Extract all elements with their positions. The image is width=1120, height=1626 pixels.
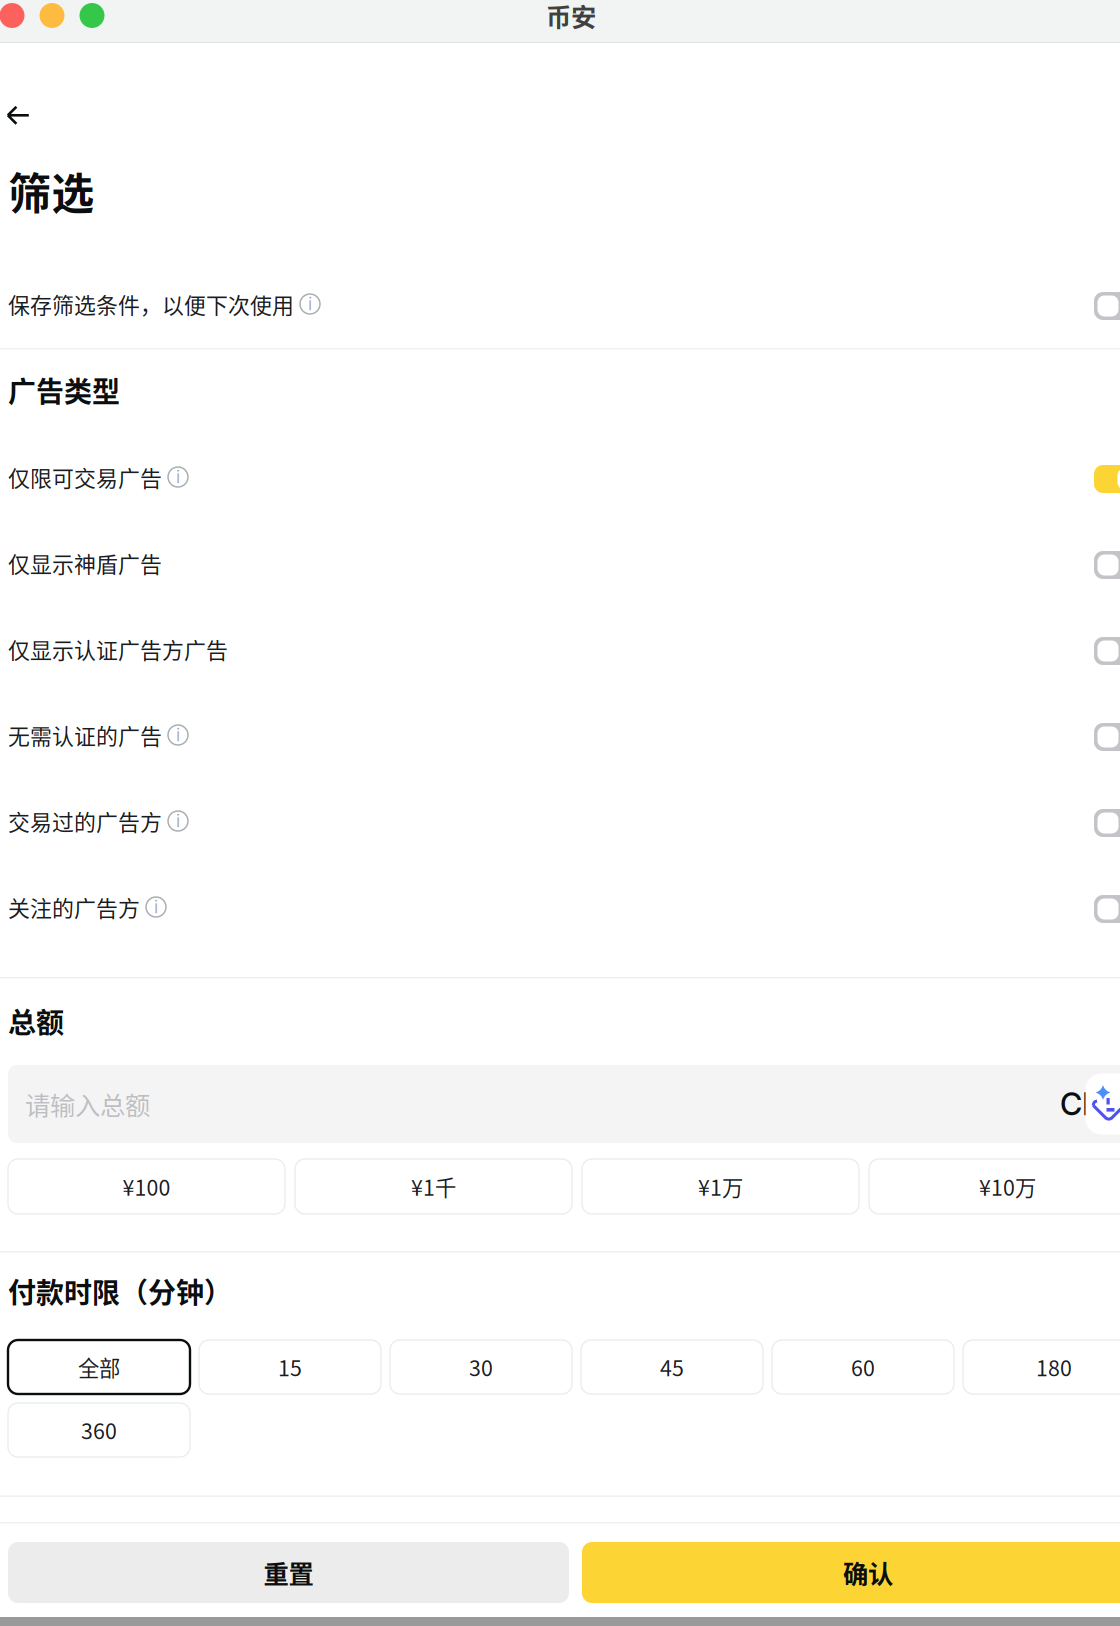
button[interactable]: 仅显示认证广告方广告 (0, 606, 1120, 692)
staticText: 360 (81, 1415, 117, 1445)
button[interactable]: 无需认证的广告 (0, 692, 1120, 778)
button[interactable]: 360 (8, 1403, 190, 1457)
staticText: 付款时限（分钟） (8, 1271, 232, 1311)
staticText: i (176, 724, 180, 745)
staticText: 15 (278, 1352, 302, 1382)
staticText: 请输入总额 (25, 1086, 150, 1122)
staticText: 仅显示神盾广告 (8, 547, 162, 579)
staticText: ¥1万 (698, 1171, 743, 1202)
staticText: 重置 (263, 1554, 313, 1591)
staticText: i (176, 466, 180, 487)
staticText: CNY (1060, 1085, 1120, 1122)
button[interactable]: ¥10万 (869, 1159, 1120, 1214)
staticText: ¥100 (122, 1171, 170, 1202)
button[interactable]: 交易过的广告方 (0, 778, 1120, 864)
staticText: 总额 (8, 1001, 64, 1041)
staticText: i (308, 293, 312, 314)
button[interactable]: 60 (772, 1340, 954, 1394)
staticText: 全部 (78, 1352, 120, 1382)
button[interactable]: 仅显示神盾广告 (0, 520, 1120, 606)
staticText: 180 (1036, 1352, 1072, 1382)
staticText: 45 (660, 1352, 684, 1382)
button[interactable]: ¥1万 (582, 1159, 859, 1214)
staticText: i (154, 896, 158, 917)
staticText: 筛选 (8, 160, 94, 222)
staticText: 仅显示认证广告方广告 (8, 633, 228, 665)
staticText: 无需认证的广告 (8, 719, 162, 751)
staticText: ¥10万 (979, 1171, 1036, 1202)
staticText: 确认 (843, 1554, 893, 1591)
button[interactable]: 确认 (582, 1542, 1120, 1603)
staticText: 60 (851, 1352, 875, 1382)
button[interactable]: 180 (963, 1340, 1120, 1394)
button[interactable]: AI assistant (1085, 1073, 1120, 1134)
button[interactable]: 重置 (8, 1542, 569, 1603)
button[interactable]: 关注的广告方 (0, 864, 1120, 950)
staticText: 交易过的广告方 (8, 805, 162, 837)
button[interactable]: ¥1千 (295, 1159, 572, 1214)
staticText: 保存筛选条件，以便下次使用 (8, 288, 294, 320)
staticText: ¥1千 (411, 1171, 456, 1202)
button[interactable]: 全部 (8, 1340, 190, 1394)
button[interactable]: 45 (581, 1340, 763, 1394)
staticText: 广告类型 (8, 370, 120, 410)
staticText: i (176, 810, 180, 831)
button[interactable]: 保存筛选条件，以便下次使用 (0, 260, 1120, 348)
staticText: 币安 (546, 0, 596, 34)
button[interactable]: Back (0, 106, 1120, 125)
staticText: 30 (469, 1352, 493, 1382)
button[interactable]: 30 (390, 1340, 572, 1394)
staticText: 关注的广告方 (8, 891, 140, 923)
button[interactable]: ¥100 (8, 1159, 285, 1214)
staticText: 仅限可交易广告 (8, 461, 162, 493)
button[interactable]: 15 (199, 1340, 381, 1394)
button[interactable]: 仅限可交易广告 (0, 434, 1120, 520)
